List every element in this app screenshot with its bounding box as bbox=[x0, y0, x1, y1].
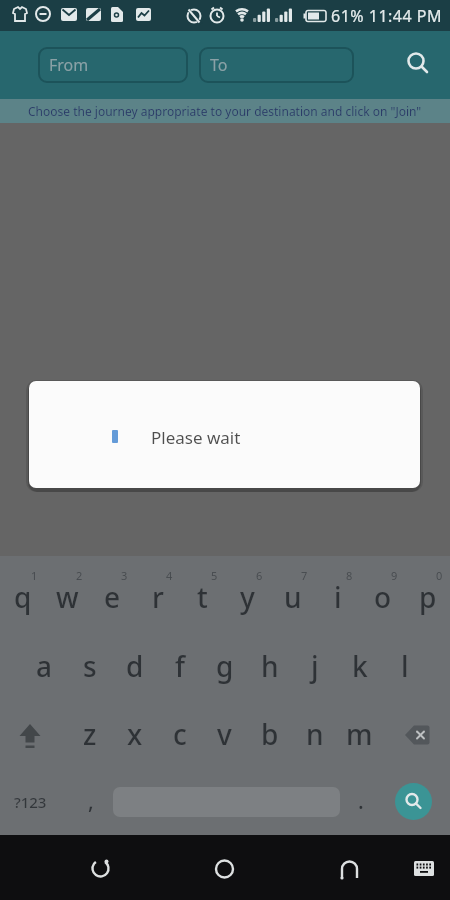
staticText: f bbox=[175, 647, 185, 685]
button[interactable]: c bbox=[157, 700, 202, 768]
staticText: r bbox=[152, 578, 164, 616]
button[interactable]: f bbox=[157, 631, 202, 700]
button[interactable]: k bbox=[337, 631, 382, 700]
button[interactable]: r bbox=[135, 563, 180, 631]
staticText: t bbox=[197, 578, 208, 616]
staticText: l bbox=[401, 647, 409, 685]
button[interactable] bbox=[395, 783, 432, 820]
staticText: ?123 bbox=[14, 792, 47, 812]
button[interactable]: b bbox=[247, 700, 292, 768]
button[interactable]: v bbox=[202, 700, 247, 768]
staticText: From bbox=[49, 54, 89, 76]
staticText: x bbox=[127, 715, 143, 753]
staticText: y bbox=[240, 578, 255, 616]
button[interactable]: t bbox=[180, 563, 225, 631]
staticText: h bbox=[261, 647, 279, 685]
button[interactable]: o bbox=[360, 563, 405, 631]
staticText: 6 bbox=[256, 568, 263, 583]
button[interactable]: g bbox=[202, 631, 247, 700]
button[interactable]: e bbox=[90, 563, 135, 631]
staticText: i bbox=[334, 578, 342, 616]
staticText: z bbox=[83, 715, 97, 753]
staticText: q bbox=[14, 578, 32, 616]
staticText: 61% 11:44 PM bbox=[331, 5, 443, 27]
button[interactable] bbox=[405, 848, 441, 884]
button[interactable]: s bbox=[67, 631, 112, 700]
staticText: 8 bbox=[346, 568, 353, 583]
staticText: o bbox=[374, 578, 392, 616]
button[interactable]: a bbox=[22, 631, 67, 700]
button[interactable] bbox=[200, 842, 250, 892]
staticText: g bbox=[216, 647, 234, 685]
button[interactable] bbox=[323, 842, 373, 892]
button[interactable]: h bbox=[247, 631, 292, 700]
button[interactable] bbox=[8, 705, 53, 765]
button[interactable]: , bbox=[68, 768, 113, 835]
staticText: . bbox=[358, 787, 364, 816]
staticText: v bbox=[217, 715, 232, 753]
staticText: a bbox=[36, 647, 53, 685]
button[interactable]: To bbox=[199, 47, 354, 83]
staticText: 5 bbox=[211, 568, 218, 583]
staticText: u bbox=[284, 578, 302, 616]
button[interactable]: p bbox=[405, 563, 450, 631]
staticText: n bbox=[306, 715, 324, 753]
staticText: 2 bbox=[76, 568, 83, 583]
staticText: Choose the journey appropriate to your d… bbox=[28, 103, 422, 119]
staticText: d bbox=[126, 647, 144, 685]
staticText: 9 bbox=[391, 568, 398, 583]
button[interactable] bbox=[75, 842, 125, 892]
button[interactable]: u bbox=[270, 563, 315, 631]
staticText: 1 bbox=[31, 568, 38, 583]
staticText: 0 bbox=[436, 568, 443, 583]
staticText: p bbox=[419, 578, 437, 616]
button[interactable]: y bbox=[225, 563, 270, 631]
staticText: w bbox=[56, 578, 79, 616]
button[interactable]: z bbox=[67, 700, 112, 768]
button[interactable] bbox=[396, 705, 441, 765]
button[interactable] bbox=[400, 46, 436, 82]
button[interactable]: w bbox=[45, 563, 90, 631]
button[interactable]: l bbox=[382, 631, 427, 700]
button[interactable]: ?123 bbox=[8, 768, 53, 835]
staticText: Please wait bbox=[151, 426, 241, 449]
staticText: 7 bbox=[301, 568, 308, 583]
staticText: k bbox=[352, 647, 368, 685]
button[interactable]: q bbox=[0, 563, 45, 631]
staticText: 3 bbox=[121, 568, 128, 583]
staticText: To bbox=[210, 54, 228, 76]
staticText: s bbox=[83, 647, 97, 685]
button[interactable]: j bbox=[292, 631, 337, 700]
staticText: m bbox=[346, 715, 373, 753]
button[interactable]: . bbox=[338, 768, 383, 835]
staticText: c bbox=[173, 715, 187, 753]
button[interactable]: i bbox=[315, 563, 360, 631]
button[interactable]: x bbox=[112, 700, 157, 768]
staticText: e bbox=[104, 578, 121, 616]
button[interactable]: n bbox=[292, 700, 337, 768]
staticText: , bbox=[88, 787, 94, 816]
staticText: j bbox=[311, 647, 319, 685]
staticText: b bbox=[261, 715, 279, 753]
button[interactable]: m bbox=[337, 700, 382, 768]
button[interactable]: From bbox=[38, 47, 188, 83]
staticText: 4 bbox=[166, 568, 173, 583]
button[interactable]: d bbox=[112, 631, 157, 700]
